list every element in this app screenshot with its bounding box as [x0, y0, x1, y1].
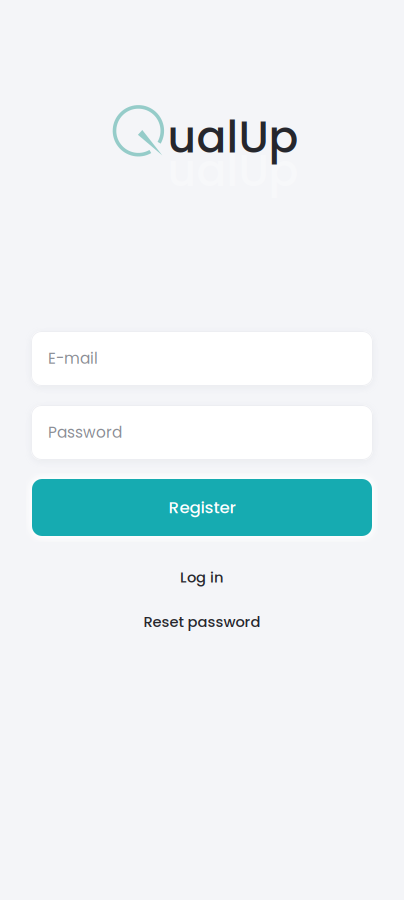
staticText: Log in	[180, 567, 224, 587]
staticText: Password	[48, 422, 122, 443]
staticText: Register	[168, 496, 235, 519]
button[interactable]: Log in	[166, 562, 238, 592]
button[interactable]: Register	[32, 479, 372, 536]
staticText: ualUp	[167, 106, 298, 168]
staticText: Reset password	[143, 611, 260, 632]
button[interactable]: Reset password	[129, 606, 274, 637]
staticText: E-mail	[48, 348, 98, 369]
button[interactable]: Password	[31, 405, 373, 460]
button[interactable]: E-mail	[31, 331, 373, 386]
staticText: ualUp	[167, 140, 298, 201]
